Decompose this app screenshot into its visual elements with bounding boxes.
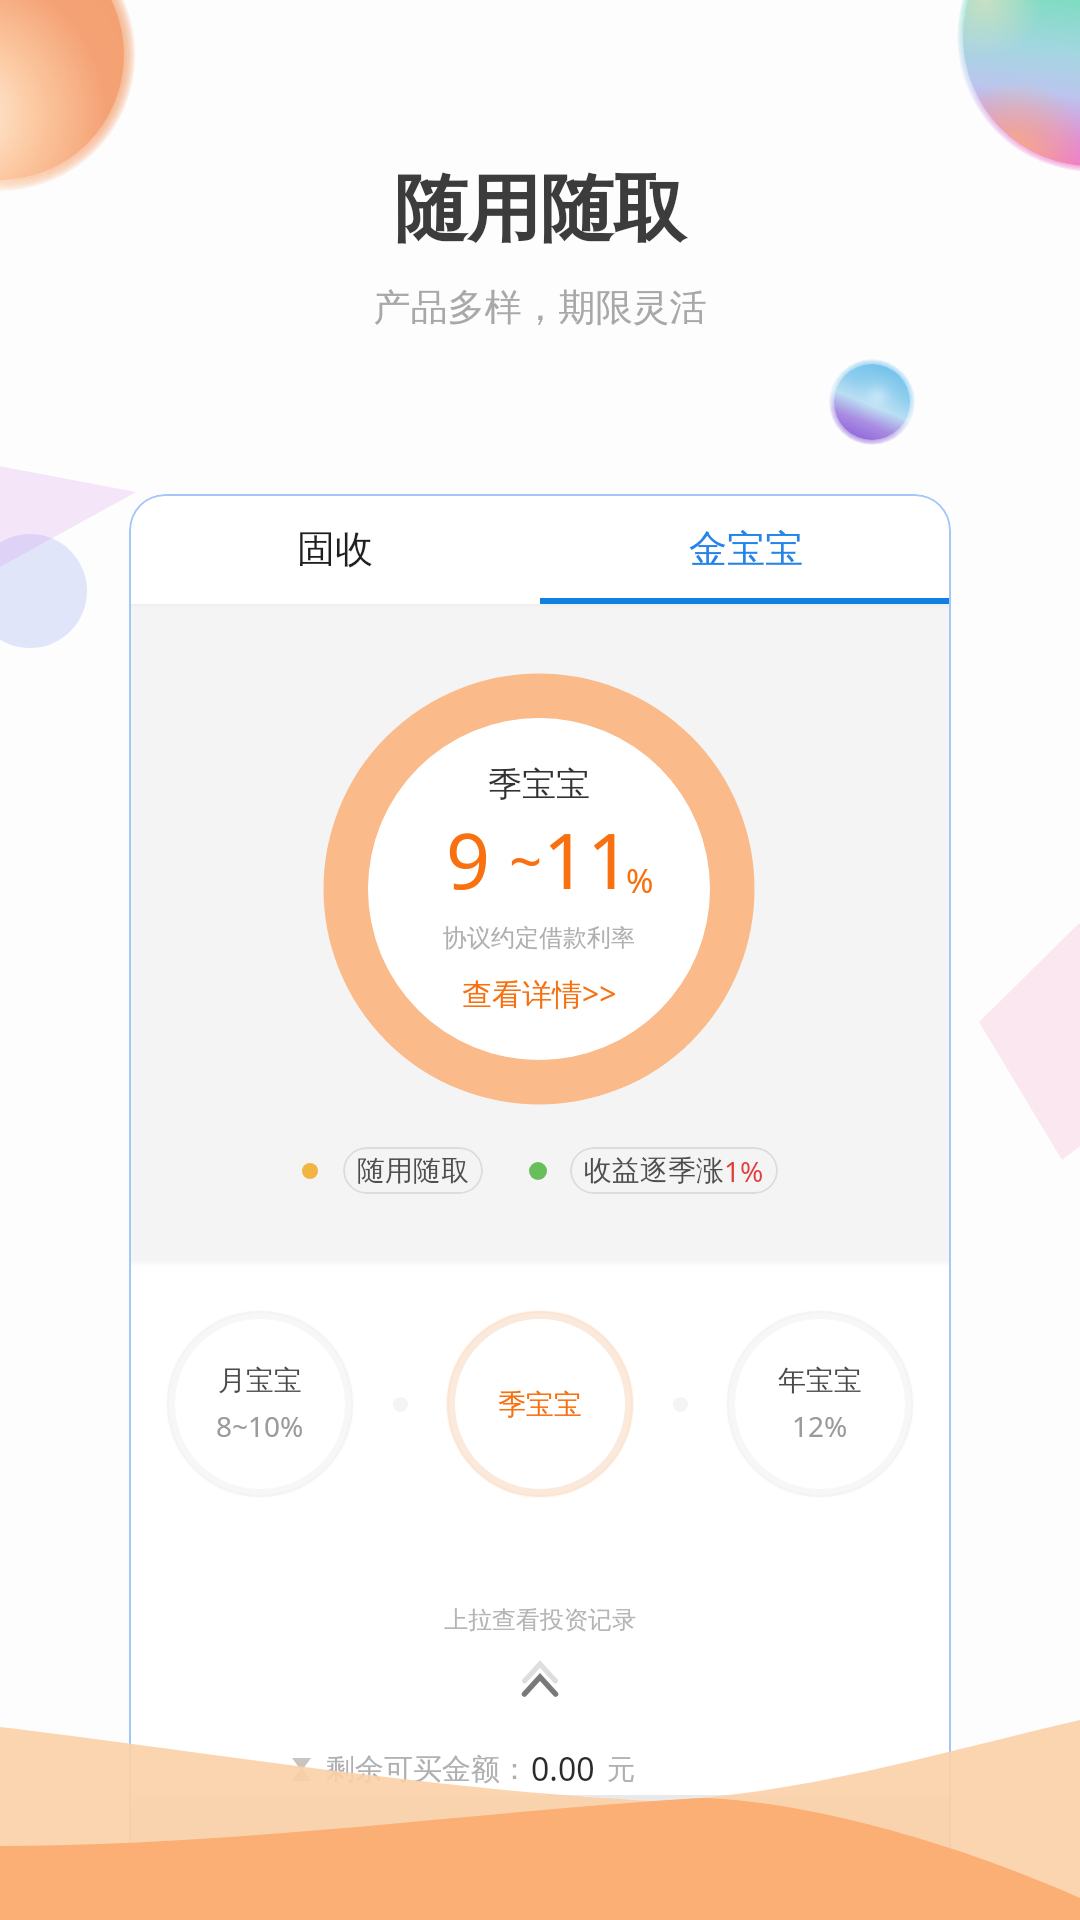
staticText: 季宝宝 xyxy=(498,1387,582,1422)
staticText: 元 xyxy=(607,1752,635,1787)
button[interactable]: 查看详情>> xyxy=(462,973,617,1014)
staticText: 季宝宝 xyxy=(488,763,590,806)
staticText: 金宝宝 xyxy=(689,525,803,573)
staticText: ~ xyxy=(509,821,543,900)
staticText: 月宝宝 xyxy=(218,1363,302,1398)
staticText: 0.00 xyxy=(531,1747,595,1791)
button[interactable]: 金宝宝 xyxy=(540,494,951,604)
staticText: 11 xyxy=(543,807,632,912)
staticText: 协议约定借款利率 xyxy=(443,923,635,953)
staticText: 产品多样，期限灵活 xyxy=(0,284,1080,331)
button[interactable]: 固收 xyxy=(129,494,540,604)
staticText: 1% xyxy=(724,1152,764,1190)
staticText: 上拉查看投资记录 xyxy=(444,1605,636,1635)
button[interactable]: 收益逐季涨 xyxy=(584,1147,764,1194)
staticText: % xyxy=(626,858,654,903)
button[interactable]: 年宝宝 xyxy=(726,1310,914,1498)
staticText: 随用随取 xyxy=(357,1153,469,1188)
button[interactable]: 季宝宝 xyxy=(446,1310,634,1498)
staticText: 随用随取 xyxy=(0,164,1080,256)
button[interactable]: Pull up to view investment records xyxy=(520,1660,560,1700)
staticText: 收益逐季涨 xyxy=(584,1153,724,1188)
button[interactable]: 月宝宝 xyxy=(166,1310,354,1498)
staticText: 剩余可买金额： xyxy=(326,1751,529,1788)
staticText: 年宝宝 xyxy=(778,1363,862,1398)
staticText: 9 xyxy=(446,807,491,912)
staticText: 固收 xyxy=(297,525,373,573)
staticText: 查看详情>> xyxy=(462,973,617,1014)
staticText: 12% xyxy=(792,1407,848,1445)
staticText: 8~10% xyxy=(216,1407,304,1445)
button[interactable]: 随用随取 xyxy=(357,1147,469,1194)
